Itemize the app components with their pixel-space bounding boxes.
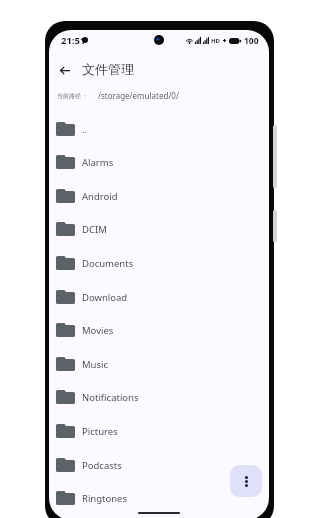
button[interactable]: Ringtones [49,481,269,515]
button[interactable]: Alarms [49,145,269,179]
button[interactable]: Podcasts [49,448,269,482]
staticText: Pictures [82,425,118,438]
button[interactable]: .. [49,112,269,146]
staticText: Movies [82,324,114,337]
button[interactable]: Notifications [49,380,269,414]
staticText: DCIM [82,223,107,236]
staticText: Documents [82,257,134,270]
button[interactable]: Documents [49,246,269,280]
staticText: 100 [244,35,259,47]
staticText: Ringtones [82,492,128,505]
staticText: Music [82,358,109,371]
staticText: 当前路径： [57,92,87,100]
button[interactable]: Back [54,59,76,81]
staticText: Podcasts [82,459,122,472]
staticText: 文件管理 [82,61,134,77]
button[interactable]: Android [49,179,269,213]
staticText: HD [211,37,220,45]
button[interactable]: Movies [49,313,269,347]
staticText: Download [82,291,128,304]
staticText: Android [82,190,118,203]
staticText: Notifications [82,391,139,404]
staticText: /storage/emulated/0/ [98,90,179,101]
staticText: Alarms [82,156,114,169]
staticText: 21:51 [61,34,86,47]
button[interactable]: More options [230,465,262,497]
button[interactable]: DCIM [49,212,269,246]
button[interactable]: Download [49,280,269,314]
button[interactable]: Music [49,347,269,381]
staticText: .. [82,123,88,136]
button[interactable]: Pictures [49,414,269,448]
